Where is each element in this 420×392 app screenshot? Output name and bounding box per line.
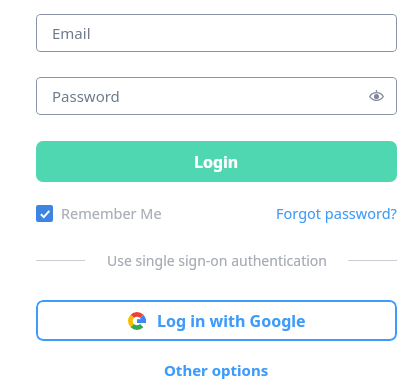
- button[interactable]: Log in with Google: [36, 300, 397, 341]
- staticText: Remember Me: [61, 203, 162, 223]
- staticText: Password: [52, 86, 120, 106]
- staticText: Login: [194, 151, 239, 173]
- button[interactable]: Forgot password?: [276, 203, 397, 223]
- button[interactable]: Email: [36, 14, 397, 52]
- staticText: Other options: [164, 360, 269, 380]
- button[interactable]: Show password: [365, 85, 387, 107]
- button[interactable]: Password: [36, 77, 397, 115]
- button[interactable]: Remember Me: [36, 203, 162, 223]
- staticText: Forgot password?: [276, 203, 397, 223]
- staticText: Email: [52, 23, 91, 43]
- staticText: Log in with Google: [157, 310, 306, 332]
- staticText: Use single sign-on authentication: [107, 251, 327, 270]
- button[interactable]: Other options: [164, 360, 269, 380]
- button[interactable]: Login: [36, 141, 397, 182]
